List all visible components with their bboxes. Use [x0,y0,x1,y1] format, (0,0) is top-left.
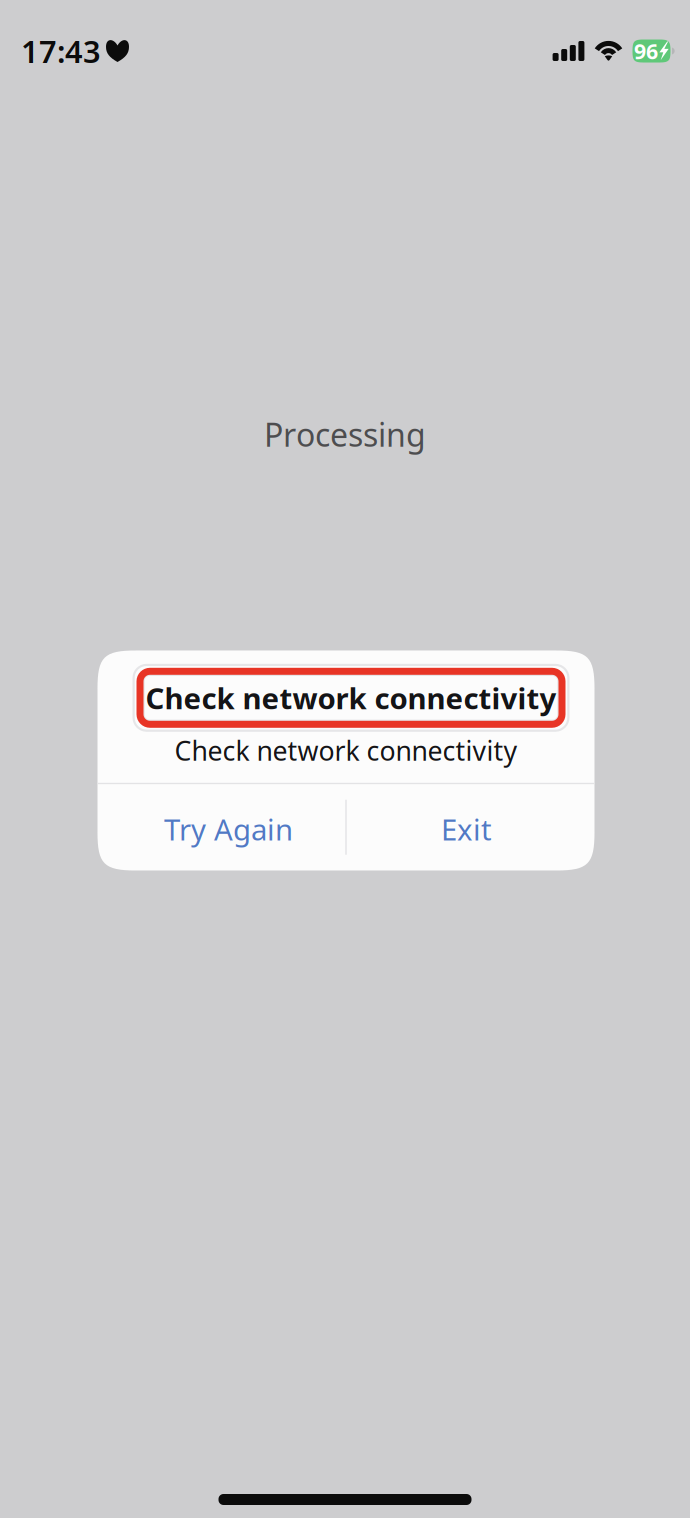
staticText: Check network connectivity [174,733,517,768]
staticText: Try Again [164,810,293,849]
staticText: Processing [264,413,426,455]
staticText: 17:43 [21,31,101,71]
staticText: Exit [441,810,492,849]
button[interactable]: Try Again [97,784,345,870]
staticText: 96 [634,37,658,65]
button[interactable]: Exit [347,784,594,870]
staticText: Check network connectivity [145,678,556,717]
